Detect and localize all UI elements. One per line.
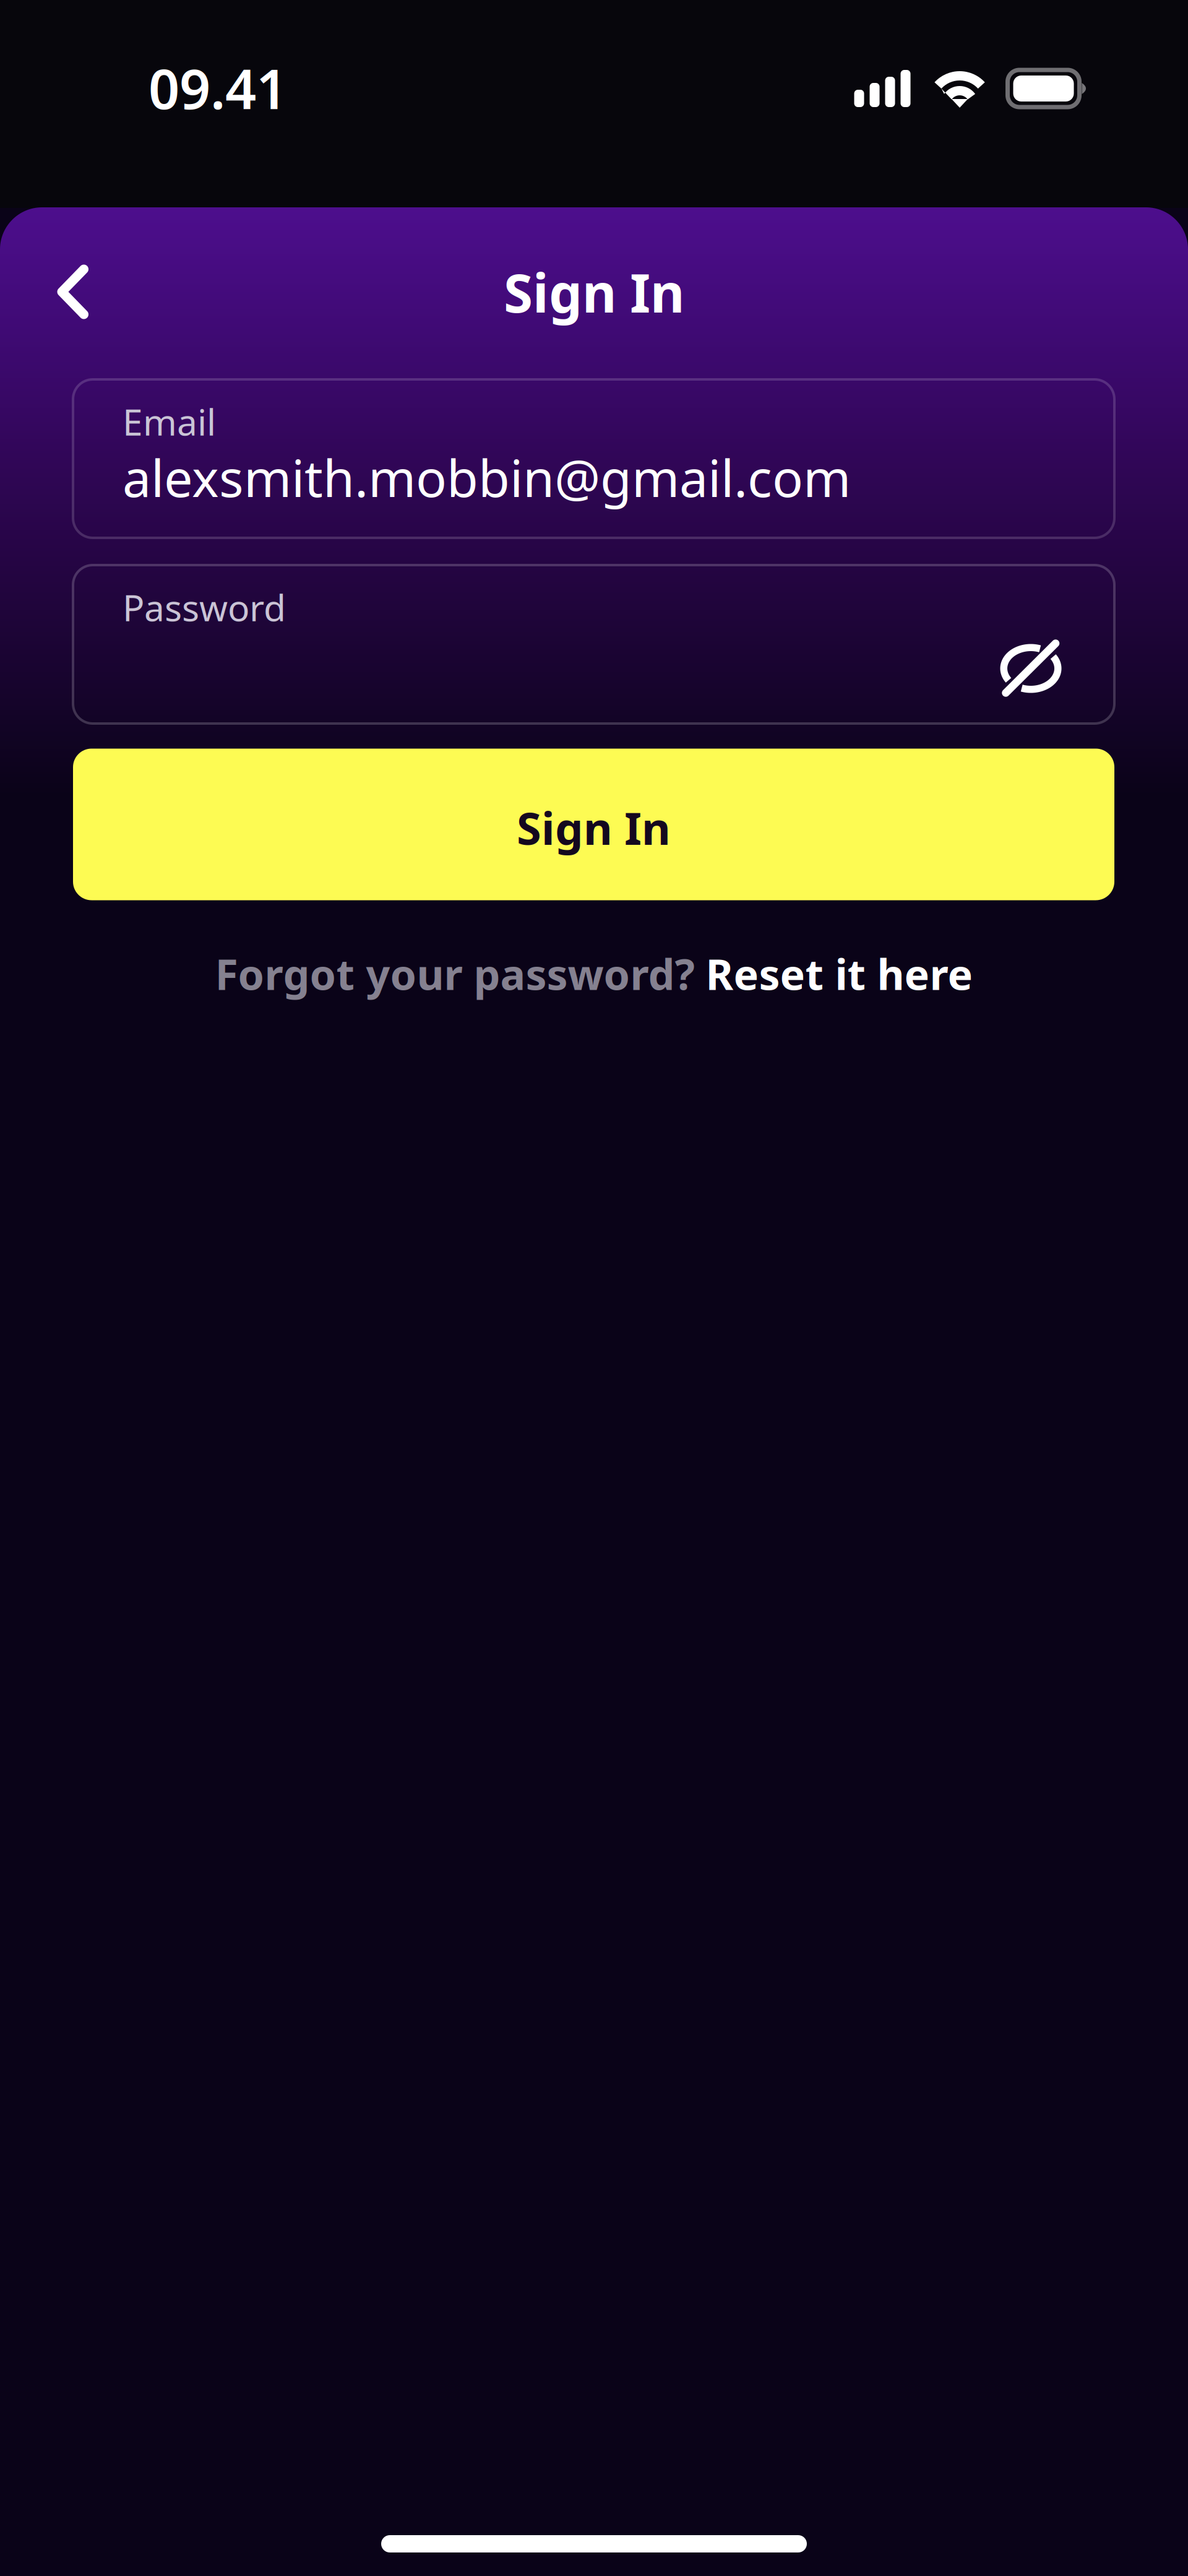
staticText: Reset it here <box>706 946 973 1001</box>
staticText: Forgot your password? <box>215 946 706 1001</box>
button[interactable]: Sign In <box>73 749 1114 900</box>
staticText: alexsmith.mobbin@gmail.com <box>123 443 851 511</box>
staticText: Password <box>123 583 286 631</box>
button[interactable]: Forgot your password? <box>215 936 973 1011</box>
button[interactable]: Show password <box>984 622 1077 715</box>
button[interactable]: Email <box>73 379 1114 538</box>
button[interactable]: Back <box>26 245 119 338</box>
staticText: Sign In <box>517 798 671 857</box>
staticText: 09.41 <box>148 52 287 124</box>
staticText: Sign In <box>504 257 684 327</box>
staticText: Email <box>123 397 216 446</box>
